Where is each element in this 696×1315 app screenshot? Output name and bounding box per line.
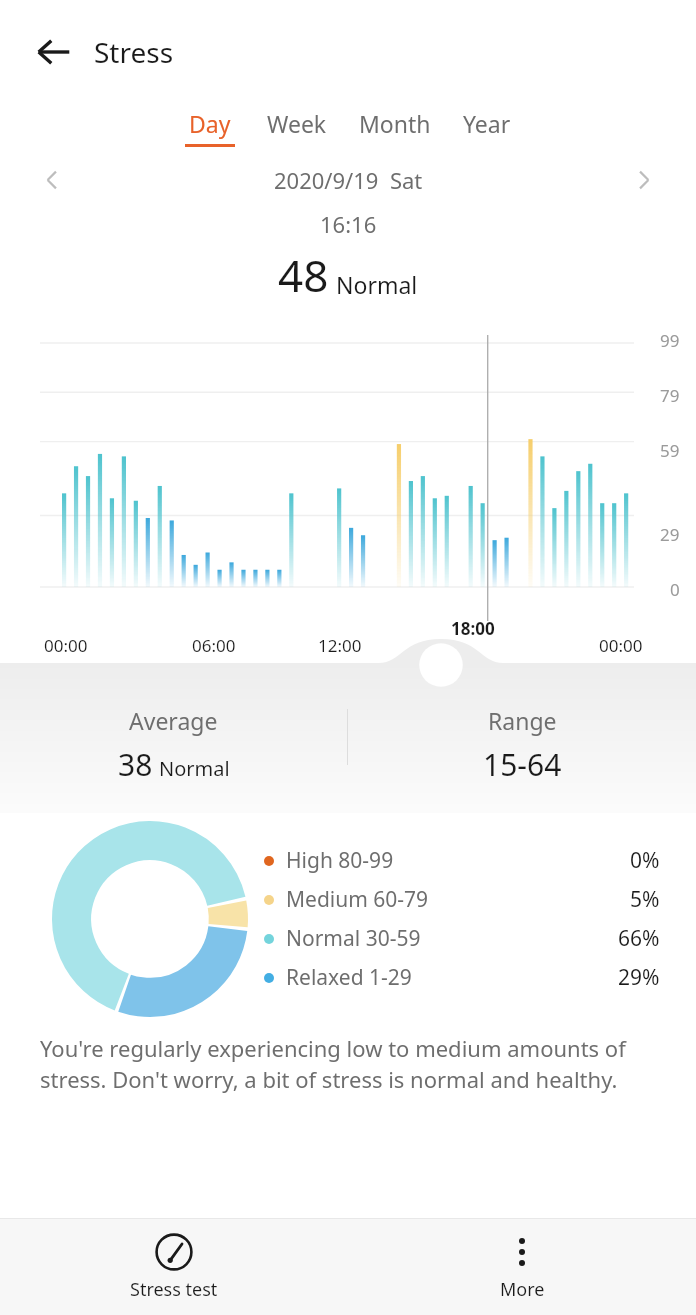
button[interactable]: High 80-99: [264, 846, 660, 875]
staticText: Day: [189, 108, 231, 139]
button[interactable]: Stress test: [0, 1219, 348, 1315]
staticText: 79: [660, 384, 680, 407]
staticText: High 80-99: [286, 846, 394, 875]
button[interactable]: Normal 30-59: [264, 924, 660, 953]
staticText: 0: [670, 578, 680, 601]
button[interactable]: Year: [447, 104, 527, 151]
staticText: 5%: [630, 885, 660, 914]
staticText: 06:00: [192, 634, 236, 657]
button[interactable]: Medium 60-79: [264, 885, 660, 914]
staticText: 0%: [630, 846, 660, 875]
staticText: 29: [660, 523, 680, 546]
staticText: Week: [267, 108, 327, 139]
staticText: Normal: [159, 755, 230, 782]
staticText: 00:00: [44, 634, 88, 657]
staticText: Normal 30-59: [286, 924, 421, 953]
staticText: 16:16: [320, 209, 377, 239]
button[interactable]: Week: [251, 104, 343, 151]
staticText: 48: [278, 245, 329, 305]
staticText: 38: [118, 744, 153, 785]
staticText: 66%: [618, 924, 660, 953]
staticText: Relaxed 1-29: [286, 963, 412, 992]
button[interactable]: Day: [169, 104, 251, 151]
button[interactable]: Back: [28, 26, 80, 78]
staticText: 29%: [618, 963, 660, 992]
staticText: 2020/9/19 Sat: [274, 165, 423, 195]
staticText: Year: [463, 108, 511, 139]
staticText: 12:00: [318, 634, 362, 657]
staticText: Month: [359, 108, 431, 139]
staticText: You're regularly experiencing low to med…: [40, 1033, 656, 1095]
button[interactable]: Next day: [620, 156, 668, 204]
staticText: Normal: [336, 269, 418, 300]
staticText: 00:00: [599, 634, 643, 657]
staticText: 15-64: [483, 744, 562, 785]
staticText: 59: [660, 439, 680, 462]
staticText: Stress: [94, 33, 174, 71]
staticText: More: [500, 1277, 545, 1302]
staticText: Medium 60-79: [286, 885, 429, 914]
staticText: Average: [129, 705, 218, 736]
staticText: Stress test: [130, 1277, 218, 1302]
button[interactable]: More: [348, 1219, 696, 1315]
button[interactable]: Relaxed 1-29: [264, 963, 660, 992]
button[interactable]: Previous day: [28, 156, 76, 204]
button[interactable]: Month: [343, 104, 447, 151]
staticText: Range: [488, 705, 557, 736]
staticText: 99: [660, 329, 680, 352]
staticText: 18:00: [451, 617, 495, 640]
